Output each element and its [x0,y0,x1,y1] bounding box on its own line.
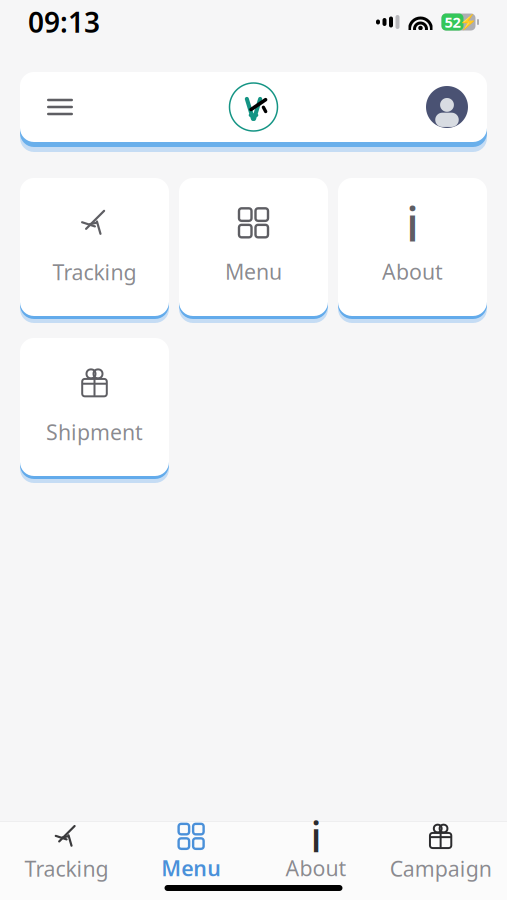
button[interactable]: i [338,174,487,320]
button[interactable]: Tracking [20,174,169,320]
staticText: Tracking [24,854,108,883]
staticText: 09:13 [28,3,100,41]
button[interactable]: Tracking [4,822,129,884]
staticText: About [285,854,346,882]
staticText: ⚡ [458,14,476,30]
staticText: Menu [225,257,282,286]
staticText: Campaign [390,854,492,883]
staticText: Shipment [46,418,143,446]
staticText: 52 [444,12,460,32]
button[interactable]: i [253,822,378,884]
button[interactable]: Campaign [378,822,503,884]
staticText: About [382,257,443,286]
staticText: i [406,191,419,255]
button[interactable]: Home [223,72,283,142]
button[interactable]: Menu [179,174,328,320]
button[interactable]: Profile [421,72,473,142]
staticText: i [310,809,321,864]
button[interactable]: Menu [34,72,86,142]
button[interactable]: Shipment [20,334,169,480]
staticText: Tracking [52,258,136,286]
button[interactable]: Menu [129,822,254,884]
staticText: Menu [161,854,221,882]
